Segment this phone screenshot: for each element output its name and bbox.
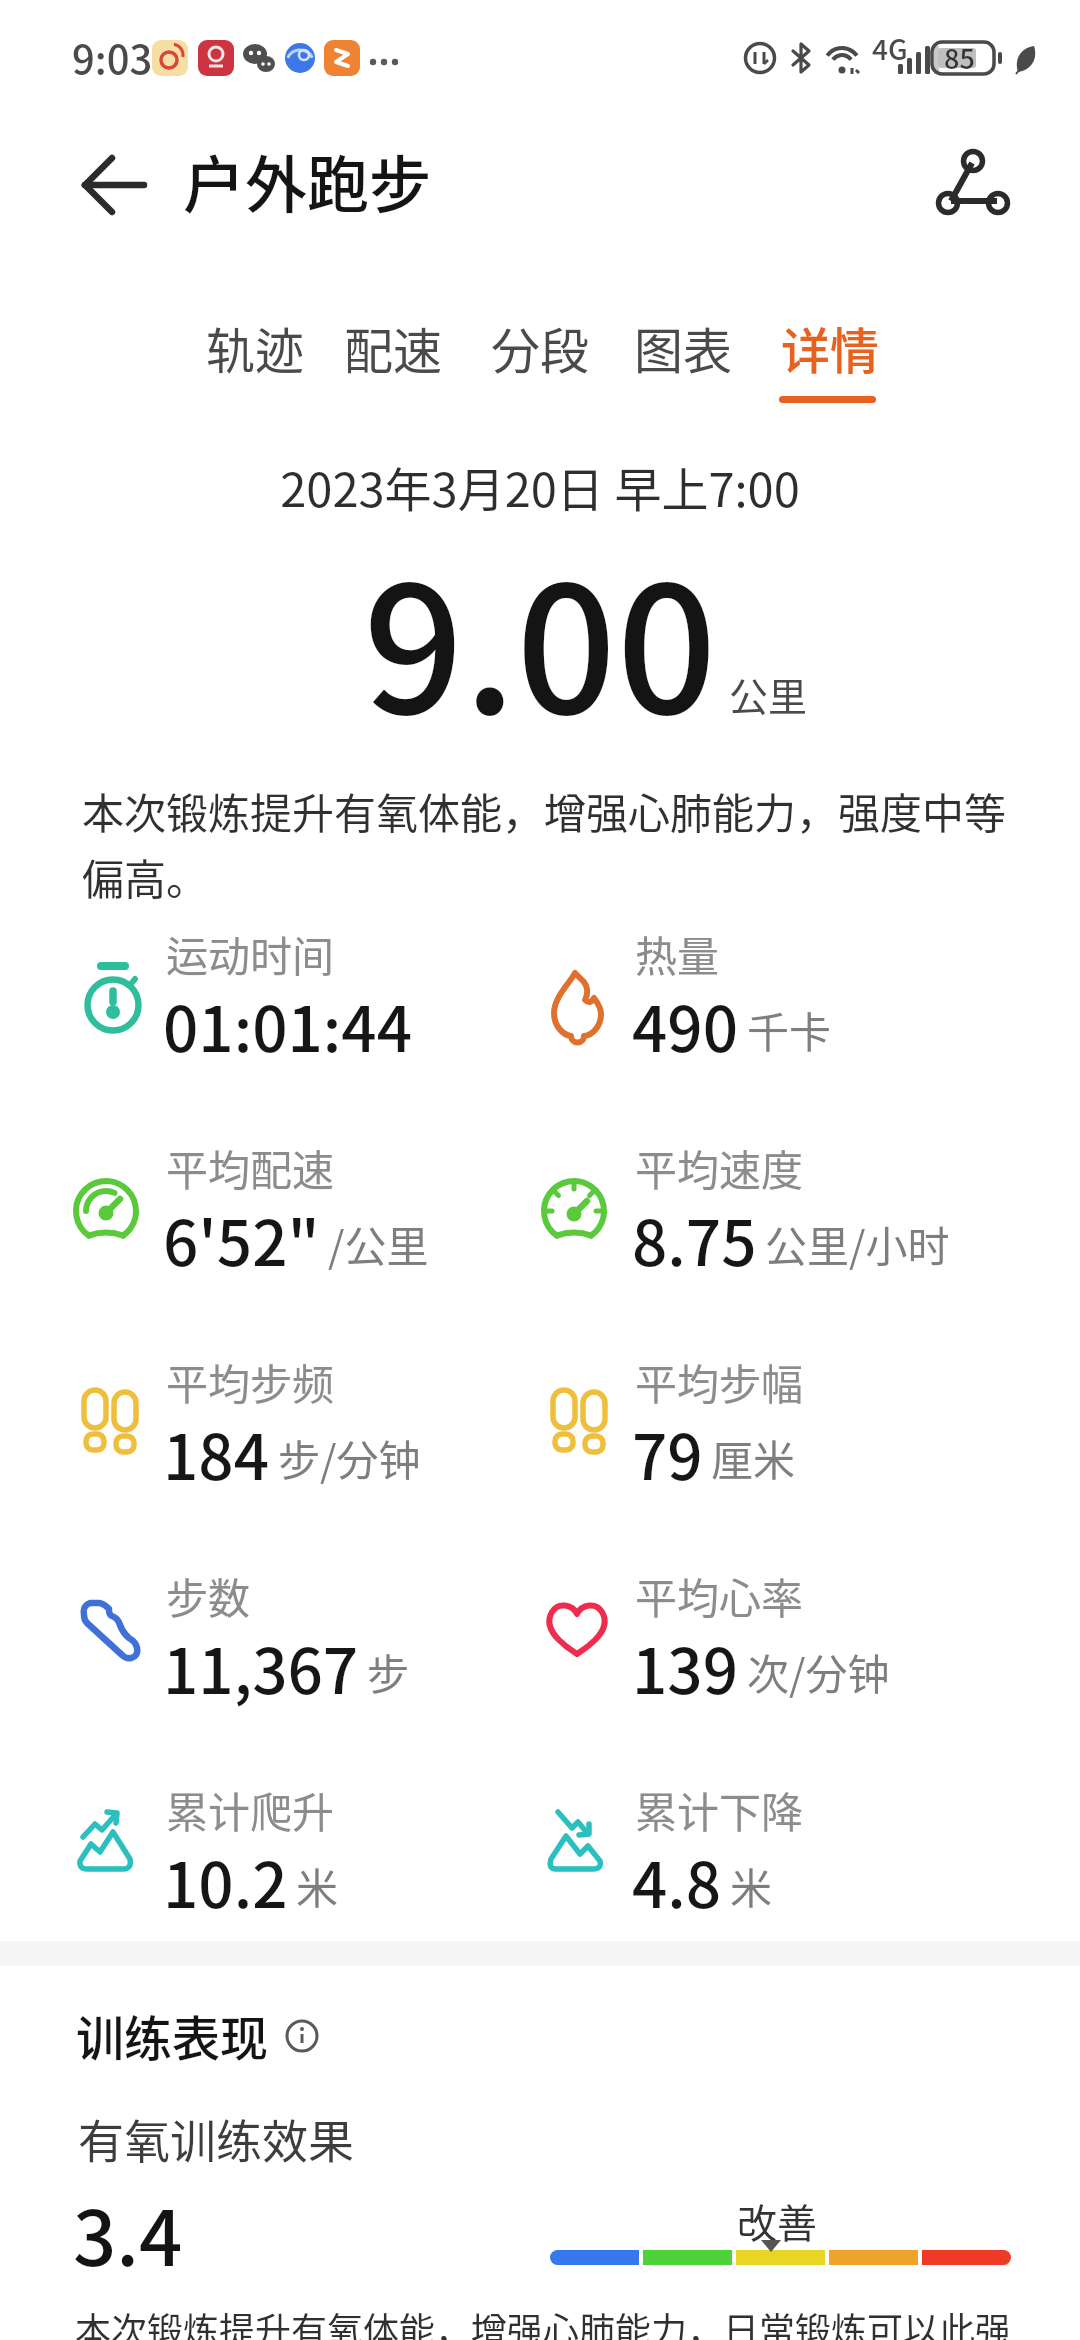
- staticText: 轨迹: [206, 312, 305, 383]
- staticText: 本次锻炼提升有氧体能，增强心肺能力，强度中等偏高。: [82, 780, 1027, 907]
- staticText: 步/分钟: [278, 1427, 421, 1488]
- staticText: 79: [632, 1408, 703, 1498]
- staticText: 米: [296, 1855, 339, 1916]
- staticText: 次/分钟: [747, 1641, 890, 1702]
- staticText: 户外跑步: [183, 136, 432, 226]
- staticText: 有氧训练效果: [78, 2105, 354, 2172]
- staticText: 490: [632, 980, 739, 1070]
- button[interactable]: 配速: [330, 306, 456, 392]
- staticText: 85: [944, 38, 975, 77]
- staticText: 6'52": [163, 1194, 320, 1284]
- staticText: 分段: [491, 312, 590, 383]
- staticText: 图表: [634, 312, 733, 383]
- staticText: 平均心率: [635, 1565, 804, 1626]
- staticText: 配速: [344, 312, 443, 383]
- staticText: 累计下降: [635, 1779, 804, 1840]
- button[interactable]: 轨迹: [192, 306, 318, 392]
- staticText: 10.2: [163, 1836, 288, 1926]
- staticText: 11,367: [163, 1622, 359, 1712]
- staticText: 公里: [729, 666, 808, 722]
- staticText: /公里: [328, 1213, 429, 1274]
- staticText: 平均步幅: [635, 1351, 804, 1412]
- staticText: 2023年3月20日 早上7:00: [0, 452, 1080, 520]
- button[interactable]: 详情: [767, 306, 893, 406]
- staticText: 详情: [781, 312, 880, 383]
- staticText: 步: [367, 1641, 410, 1702]
- staticText: 训练表现: [76, 2000, 269, 2070]
- staticText: 3.4: [73, 2178, 183, 2288]
- staticText: 4G: [872, 28, 908, 69]
- staticText: 8.75: [632, 1194, 757, 1284]
- staticText: 累计爬升: [166, 1779, 335, 1840]
- staticText: 平均步频: [166, 1351, 335, 1412]
- staticText: 184: [163, 1408, 270, 1498]
- staticText: 本次锻炼提升有氧体能，增强心肺能力，日常锻炼可以此强: [75, 2302, 1012, 2340]
- staticText: 改善: [737, 2192, 817, 2250]
- button[interactable]: [282, 2014, 326, 2058]
- staticText: 热量: [635, 923, 720, 984]
- button[interactable]: [925, 135, 1025, 235]
- staticText: 9.00: [0, 510, 1080, 765]
- staticText: 01:01:44: [163, 980, 412, 1070]
- staticText: 千卡: [747, 999, 832, 1060]
- staticText: 厘米: [711, 1427, 796, 1488]
- button[interactable]: [62, 145, 162, 225]
- staticText: 运动时间: [166, 923, 335, 984]
- staticText: 139: [632, 1622, 739, 1712]
- staticText: 4.8: [632, 1836, 722, 1926]
- staticText: 平均配速: [166, 1137, 335, 1198]
- staticText: 公里/小时: [765, 1213, 950, 1274]
- button[interactable]: 图表: [620, 306, 746, 392]
- staticText: 平均速度: [635, 1137, 804, 1198]
- staticText: 9:03: [72, 28, 153, 86]
- button[interactable]: 分段: [477, 306, 603, 392]
- staticText: 米: [730, 1855, 773, 1916]
- staticText: 步数: [166, 1565, 251, 1626]
